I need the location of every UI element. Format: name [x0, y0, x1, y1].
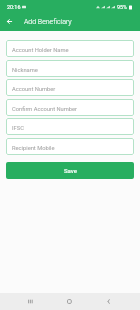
button[interactable]: Home — [61, 293, 78, 310]
staticText: Add Beneficiary — [24, 18, 72, 26]
button[interactable]: Recipient Mobile — [6, 138, 134, 155]
staticText: 95% — [117, 4, 128, 10]
button[interactable]: Back — [100, 293, 117, 310]
staticText: IFSC — [12, 125, 24, 132]
staticText: Recipient Mobile — [12, 145, 55, 152]
button[interactable]: Confirm Account Number — [6, 99, 134, 116]
button[interactable]: Navigate back — [2, 14, 17, 29]
staticText: Account Holder Name — [12, 47, 69, 54]
staticText: 20:16 — [7, 4, 21, 10]
button[interactable]: IFSC — [6, 118, 134, 135]
button[interactable]: Nickname — [6, 60, 134, 77]
button[interactable]: Recent apps — [22, 293, 39, 310]
button[interactable]: Account Number — [6, 79, 134, 96]
staticText: Confirm Account Number — [12, 106, 78, 113]
button[interactable]: Account Holder Name — [6, 40, 134, 57]
staticText: Account Number — [12, 86, 56, 93]
staticText: Save — [64, 167, 77, 174]
button[interactable]: Save — [6, 162, 134, 179]
staticText: Nickname — [12, 67, 38, 74]
